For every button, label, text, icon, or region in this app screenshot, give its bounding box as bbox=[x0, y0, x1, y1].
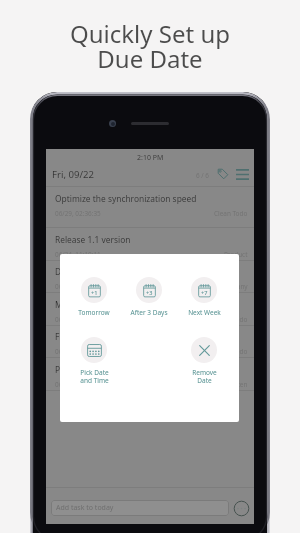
staticText: Fix the login bug bbox=[55, 331, 121, 342]
staticText: Product bbox=[224, 250, 248, 259]
staticText: After 3 Days bbox=[130, 308, 168, 317]
button[interactable]: Design new landing page bbox=[46, 260, 254, 293]
staticText: 2:10 PM bbox=[137, 153, 164, 163]
button[interactable]: Pick Date and Time bbox=[67, 333, 121, 385]
staticText: Design new landing page bbox=[55, 266, 155, 277]
staticText: Meeting with the team bbox=[55, 299, 145, 310]
staticText: Company bbox=[219, 282, 248, 291]
staticText: Next Week bbox=[188, 308, 221, 317]
staticText: 06/15, 08:15:27 bbox=[55, 380, 101, 389]
staticText: 06/18, 18:30:12 bbox=[55, 347, 101, 356]
button[interactable]: Tags bbox=[215, 166, 231, 182]
button[interactable]: +1 bbox=[67, 273, 121, 317]
button[interactable]: +3 bbox=[122, 273, 176, 317]
button[interactable]: Remove Date bbox=[177, 333, 231, 385]
staticText: Optimize the synchronization speed bbox=[55, 193, 197, 204]
staticText: +3 bbox=[146, 289, 153, 297]
button[interactable]: Release 1.1 version bbox=[46, 228, 254, 261]
staticText: Written bbox=[225, 380, 248, 389]
staticText: +1 bbox=[91, 289, 98, 297]
staticText: Fri, 09/22 bbox=[52, 168, 95, 181]
staticText: 06/20, 14:05:00 bbox=[55, 315, 101, 324]
staticText: +7 bbox=[201, 289, 208, 297]
staticText: Clean Todo bbox=[214, 315, 248, 324]
button[interactable]: Menu bbox=[234, 166, 250, 182]
staticText: 6 / 6 bbox=[196, 171, 210, 180]
staticText: 06/29, 02:36:35 bbox=[55, 209, 101, 218]
button[interactable]: +7 bbox=[177, 273, 231, 317]
button[interactable]: Fix the login bug bbox=[46, 325, 254, 358]
button[interactable]: Prepare weekly report bbox=[46, 358, 254, 391]
staticText: 06/21, 09:22:40 bbox=[55, 282, 101, 291]
staticText: Tomorrow bbox=[78, 308, 110, 317]
staticText: Prepare weekly report bbox=[55, 364, 143, 375]
button[interactable]: More options bbox=[233, 500, 250, 517]
button[interactable]: Meeting with the team bbox=[46, 293, 254, 326]
staticText: 06/24, 11:10:11 bbox=[55, 250, 101, 259]
staticText: Pick Date and Time bbox=[80, 368, 109, 385]
staticText: Add task to today bbox=[56, 503, 114, 513]
staticText: Clean Todo bbox=[214, 209, 248, 218]
staticText: Quickly Set up Due Date bbox=[0, 17, 300, 75]
staticText: Clean Todo bbox=[214, 347, 248, 356]
staticText: Remove Date bbox=[192, 368, 217, 385]
button[interactable]: Add task to today bbox=[51, 500, 229, 516]
button[interactable]: Optimize the synchronization speed bbox=[46, 187, 254, 228]
staticText: Release 1.1 version bbox=[55, 234, 131, 245]
